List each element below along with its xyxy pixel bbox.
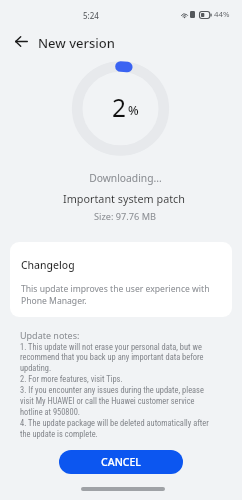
staticText: Important system patch bbox=[63, 191, 185, 206]
staticText: This update improves the user experience… bbox=[21, 283, 217, 307]
staticText: Update notes: bbox=[20, 329, 80, 341]
staticText: 2 bbox=[112, 91, 127, 124]
staticText: 5:24 bbox=[83, 10, 99, 21]
staticText: % bbox=[128, 102, 139, 119]
staticText: 44% bbox=[214, 9, 230, 20]
staticText: Size: 97.76 MB bbox=[94, 210, 156, 223]
button[interactable]: CANCEL bbox=[59, 450, 183, 474]
staticText: CANCEL bbox=[101, 455, 141, 469]
button[interactable]: Changelog bbox=[10, 242, 232, 317]
staticText: New version bbox=[38, 34, 115, 52]
button[interactable]: Back bbox=[9, 29, 33, 53]
staticText: Changelog bbox=[21, 258, 75, 272]
staticText: Downloading... bbox=[89, 171, 162, 185]
staticText: 1. This update will not erase your perso… bbox=[20, 342, 210, 439]
